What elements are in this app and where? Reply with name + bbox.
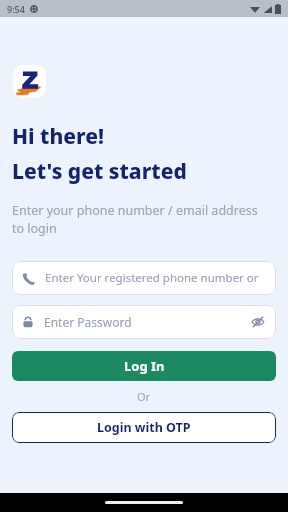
button[interactable]: Login with OTP <box>12 412 276 443</box>
button[interactable]: Show password <box>250 314 266 330</box>
staticText: Enter Password <box>44 314 132 330</box>
staticText: Let's get started <box>12 157 187 186</box>
staticText: Or <box>137 389 151 404</box>
button[interactable]: Log In <box>12 351 276 381</box>
staticText: Log In <box>124 357 165 375</box>
other: Password <box>22 316 34 328</box>
staticText: 9:54 <box>7 3 25 15</box>
staticText: Enter Your registered phone number or em… <box>45 270 266 286</box>
button[interactable]: Phone <box>12 261 276 295</box>
staticText: Enter your phone number / email address … <box>12 202 266 237</box>
staticText: Login with OTP <box>97 419 191 436</box>
button[interactable]: Password <box>12 305 276 339</box>
other: Phone <box>22 272 35 285</box>
staticText: Hi there! <box>12 122 104 151</box>
